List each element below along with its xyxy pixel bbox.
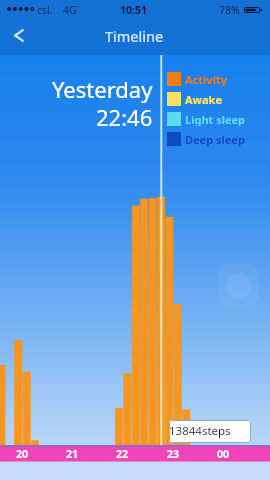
staticText: 10:51	[120, 3, 147, 17]
button[interactable]: 13844steps	[169, 420, 251, 443]
staticText: Deep sleep	[185, 132, 245, 146]
staticText: csl.	[37, 3, 53, 17]
staticText: Awake	[185, 92, 223, 106]
button[interactable]: Activity	[167, 72, 227, 86]
staticText: 4G	[63, 3, 77, 17]
staticText: Timeline	[105, 26, 164, 46]
staticText: 22:46	[96, 102, 153, 132]
staticText: 00	[217, 447, 230, 461]
staticText: Yesterday	[52, 74, 153, 104]
staticText: 78%	[219, 3, 240, 17]
staticText: 20	[16, 447, 29, 461]
button[interactable]: Deep sleep	[167, 132, 245, 146]
staticText: Activity	[185, 72, 227, 86]
button[interactable]: Back	[0, 21, 40, 55]
staticText: 22	[116, 447, 129, 461]
staticText: Light sleep	[185, 112, 246, 126]
staticText: 13844steps	[169, 423, 231, 439]
staticText: 23	[167, 447, 180, 461]
button[interactable]: Light sleep	[167, 112, 246, 126]
staticText: 21	[66, 447, 79, 461]
button[interactable]: Awake	[167, 92, 223, 106]
